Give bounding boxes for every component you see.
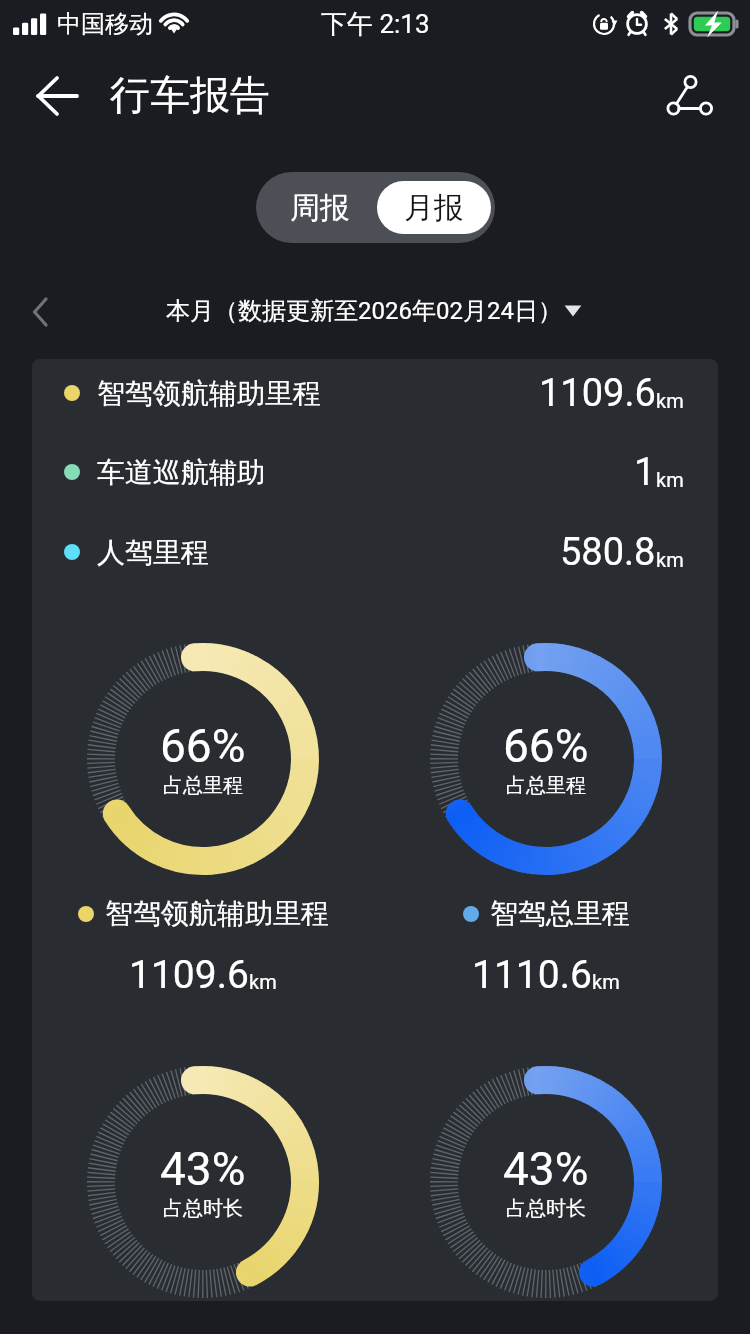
staticText: 580.8 <box>560 530 656 575</box>
button[interactable]: Previous period <box>24 293 62 331</box>
button[interactable]: 智驾总里程 <box>463 896 630 931</box>
staticText: 占总时长 <box>163 1196 243 1221</box>
button[interactable]: 智驾领航辅助里程 <box>32 359 718 433</box>
button[interactable]: 本月（数据更新至2026年02月24日） <box>160 292 590 330</box>
staticText: 1109.6 <box>539 371 656 416</box>
staticText: 占总时长 <box>506 1196 586 1221</box>
staticText: 中国移动 <box>57 9 153 39</box>
staticText: km <box>656 548 684 571</box>
staticText: 周报 <box>290 189 350 227</box>
button[interactable]: 周报 <box>256 172 384 243</box>
staticText: km <box>249 970 277 993</box>
staticText: 行车报告 <box>110 70 270 120</box>
staticText: 占总里程 <box>506 773 586 798</box>
button[interactable]: Back <box>29 68 85 124</box>
button[interactable]: Share <box>662 68 718 124</box>
staticText: 66% <box>503 719 589 773</box>
staticText: 1109.6 <box>129 952 249 998</box>
staticText: 月报 <box>404 189 464 227</box>
staticText: km <box>656 389 684 412</box>
staticText: 人驾里程 <box>97 535 209 570</box>
staticText: 1110.6 <box>472 952 592 998</box>
staticText: 智驾领航辅助里程 <box>105 896 329 931</box>
staticText: 43% <box>160 1142 246 1196</box>
button[interactable]: 车道巡航辅助 <box>32 432 718 512</box>
staticText: 智驾总里程 <box>490 896 630 931</box>
staticText: 66% <box>160 719 246 773</box>
button[interactable]: 月报 <box>377 181 491 234</box>
staticText: 43% <box>503 1142 589 1196</box>
staticText: 本月（数据更新至2026年02月24日） <box>166 296 562 326</box>
staticText: km <box>656 468 684 491</box>
staticText: 车道巡航辅助 <box>97 455 265 490</box>
staticText: 下午 2:13 <box>321 8 430 41</box>
staticText: 1 <box>634 450 656 495</box>
staticText: km <box>592 970 620 993</box>
staticText: 智驾领航辅助里程 <box>97 376 321 411</box>
button[interactable]: 人驾里程 <box>32 512 718 592</box>
button[interactable]: 智驾领航辅助里程 <box>78 896 329 931</box>
staticText: 占总里程 <box>163 773 243 798</box>
